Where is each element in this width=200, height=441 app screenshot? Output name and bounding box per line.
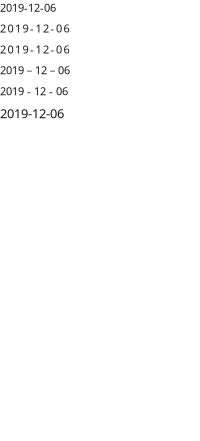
staticText: 2019-12-06: [0, 42, 69, 57]
staticText: 2019-12-06: [0, 104, 64, 122]
staticText: 2019-12-06: [0, 21, 69, 36]
staticText: 2019-12-06: [0, 0, 56, 15]
staticText: 2019 - 12 - 06: [0, 84, 68, 98]
staticText: 2019－12－06: [0, 63, 70, 78]
